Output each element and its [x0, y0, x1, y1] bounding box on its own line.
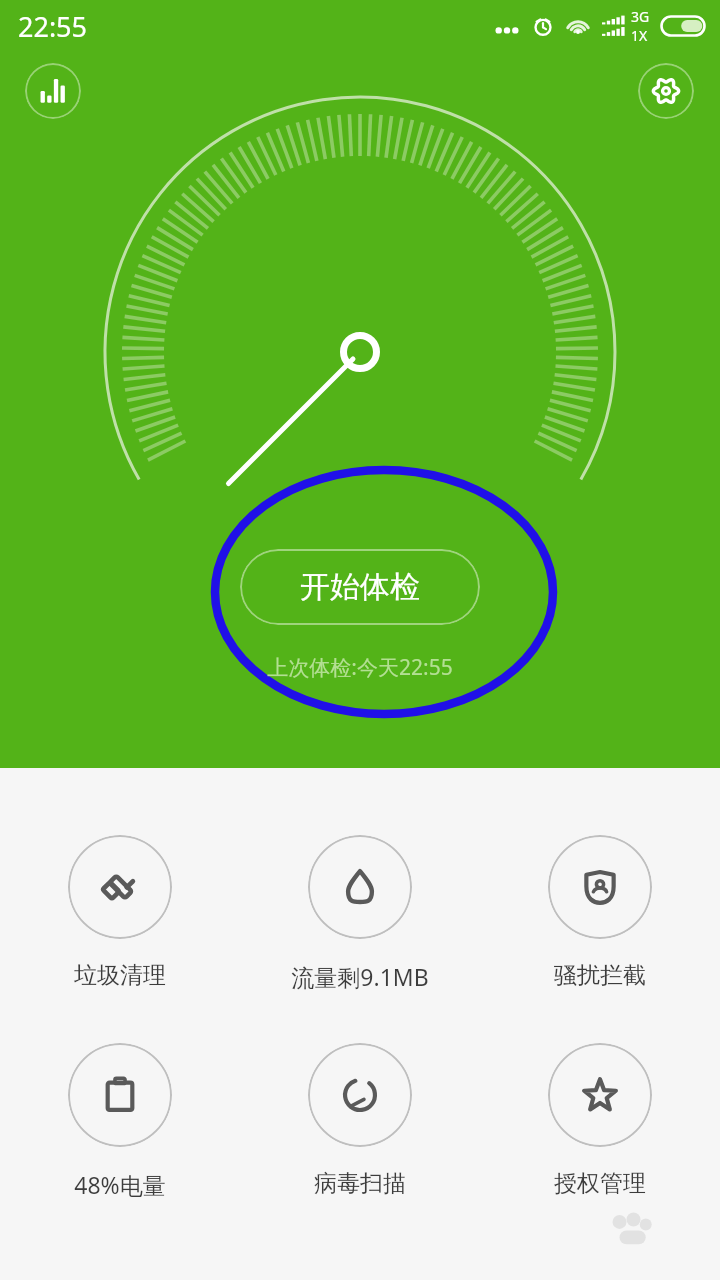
button[interactable]: 开始体检: [240, 549, 480, 625]
button[interactable]: 48%电量: [0, 1043, 240, 1200]
staticText: 流量剩9.1MB: [291, 961, 429, 992]
staticText: 垃圾清理: [74, 961, 166, 990]
button[interactable]: Settings: [638, 63, 694, 119]
button[interactable]: 病毒扫描: [240, 1043, 480, 1198]
button[interactable]: 骚扰拦截: [480, 835, 720, 990]
staticText: 授权管理: [554, 1169, 646, 1198]
staticText: 22:55: [18, 8, 88, 45]
staticText: 3G: [631, 7, 650, 26]
staticText: 骚扰拦截: [554, 961, 646, 990]
staticText: 1X: [631, 26, 648, 45]
button[interactable]: Statistics: [25, 63, 81, 119]
button[interactable]: 授权管理: [480, 1043, 720, 1198]
staticText: 48%电量: [74, 1169, 166, 1200]
staticText: 病毒扫描: [314, 1169, 406, 1198]
button[interactable]: 流量剩9.1MB: [240, 835, 480, 992]
staticText: 上次体检:今天22:55: [267, 653, 453, 682]
staticText: 开始体检: [300, 568, 420, 606]
button[interactable]: 垃圾清理: [0, 835, 240, 990]
